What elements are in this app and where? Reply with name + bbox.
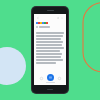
button[interactable]: Play [47,74,54,81]
button[interactable]: More options [60,16,64,20]
button[interactable]: Rewind [38,75,44,81]
button[interactable]: Forward [56,75,62,81]
button[interactable]: Back [36,16,40,20]
button[interactable]: Share [56,16,60,20]
button[interactable]: Back [36,15,64,20]
